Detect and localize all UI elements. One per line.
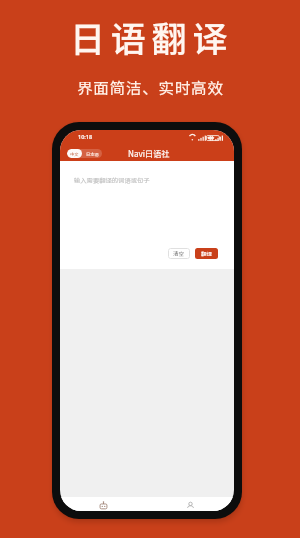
staticText: 10:18 bbox=[78, 133, 93, 140]
staticText: 界面简洁、实时高效 bbox=[77, 76, 224, 98]
button[interactable]: 清空 bbox=[168, 248, 190, 259]
button[interactable]: 中文 bbox=[67, 149, 102, 158]
staticText: 日语翻译 bbox=[70, 11, 234, 62]
staticText: 翻译 bbox=[201, 250, 213, 258]
button[interactable]: 我的 bbox=[147, 497, 234, 511]
button[interactable]: 翻译 bbox=[195, 248, 218, 259]
staticText: 中文 bbox=[70, 151, 79, 157]
staticText: 输入需要翻译的词语或句子 bbox=[74, 176, 150, 185]
staticText: Navi日语社 bbox=[128, 147, 170, 159]
staticText: 日本语 bbox=[86, 151, 99, 157]
button[interactable]: 智能翻译 bbox=[60, 497, 147, 511]
staticText: 清空 bbox=[173, 250, 185, 258]
